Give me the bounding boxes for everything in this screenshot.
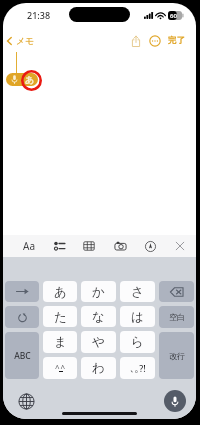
staticText: た bbox=[54, 309, 67, 325]
button[interactable]: ABC bbox=[5, 332, 39, 379]
staticText: さ bbox=[131, 284, 144, 300]
staticText: 60 bbox=[170, 12, 177, 20]
button[interactable]: さ bbox=[120, 281, 155, 302]
button[interactable]: 改行 bbox=[159, 332, 194, 379]
staticText: あ bbox=[25, 74, 35, 85]
staticText: あ bbox=[54, 284, 67, 300]
staticText: 完了 bbox=[168, 35, 185, 46]
staticText: Aa bbox=[23, 239, 35, 253]
button[interactable]: あ bbox=[22, 73, 38, 86]
button[interactable]: Camera bbox=[110, 236, 130, 256]
button[interactable]: な bbox=[81, 306, 116, 327]
button[interactable]: ､｡?! bbox=[120, 357, 155, 379]
staticText: 21:38 bbox=[27, 9, 51, 21]
staticText: わ bbox=[92, 360, 105, 376]
button[interactable]: Switch keyboard bbox=[18, 393, 35, 410]
button[interactable]: Backspace bbox=[159, 281, 194, 302]
button[interactable]: Markup bbox=[140, 236, 160, 256]
staticText: ^^ bbox=[55, 362, 66, 373]
staticText: ､｡?! bbox=[130, 362, 146, 374]
button[interactable]: Checklist bbox=[49, 236, 69, 256]
staticText: ABC bbox=[14, 350, 31, 362]
staticText: は bbox=[131, 309, 144, 325]
staticText: メモ bbox=[16, 35, 35, 46]
staticText: な bbox=[92, 309, 105, 325]
button[interactable]: More options bbox=[147, 33, 163, 49]
button[interactable]: わ bbox=[81, 357, 116, 379]
button[interactable]: や bbox=[81, 331, 116, 353]
staticText: ま bbox=[54, 334, 67, 350]
staticText: か bbox=[92, 284, 105, 300]
button[interactable]: あ bbox=[43, 281, 77, 302]
staticText: 改行 bbox=[169, 351, 185, 361]
button[interactable]: Share bbox=[128, 33, 144, 49]
staticText: や bbox=[92, 334, 105, 350]
button[interactable]: Aa bbox=[19, 236, 39, 256]
button[interactable]: Next bbox=[5, 281, 39, 302]
button[interactable]: 空白 bbox=[159, 306, 194, 328]
button[interactable]: は bbox=[120, 306, 155, 327]
button[interactable]: ま bbox=[43, 331, 77, 353]
button[interactable]: Table bbox=[79, 236, 99, 256]
button[interactable]: Dictation bbox=[6, 73, 22, 86]
button[interactable]: 完了 bbox=[166, 32, 187, 49]
button[interactable]: Close keyboard bbox=[170, 236, 190, 256]
button[interactable]: Undo bbox=[5, 306, 39, 328]
staticText: 空白 bbox=[169, 312, 185, 322]
button[interactable]: Dictate bbox=[164, 390, 186, 412]
button[interactable]: た bbox=[43, 306, 77, 327]
staticText: ら bbox=[131, 334, 144, 350]
button[interactable]: Emoticon bbox=[43, 357, 77, 379]
button[interactable]: か bbox=[81, 281, 116, 302]
button[interactable]: メモ bbox=[3, 33, 37, 48]
button[interactable]: ら bbox=[120, 331, 155, 353]
